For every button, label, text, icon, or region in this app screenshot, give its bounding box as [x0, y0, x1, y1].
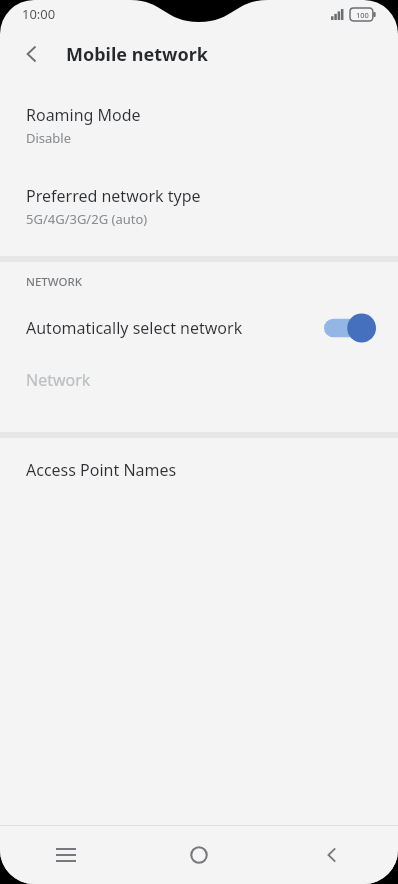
button[interactable]: Back — [265, 826, 398, 884]
staticText: NETWORK — [26, 274, 83, 290]
staticText: Preferred network type — [26, 185, 201, 207]
staticText: Roaming Mode — [26, 104, 141, 126]
button[interactable]: Preferred network type — [0, 151, 398, 232]
button[interactable]: Back — [10, 32, 54, 76]
button[interactable]: Roaming Mode — [0, 92, 398, 151]
button[interactable]: Home — [132, 826, 265, 884]
staticText: 10:00 — [22, 5, 56, 23]
button[interactable]: Recents — [0, 826, 132, 884]
staticText: Network — [26, 369, 91, 391]
staticText: Mobile network — [66, 42, 208, 67]
button[interactable]: Access Point Names — [0, 438, 398, 502]
staticText: 5G/4G/3G/2G (auto) — [26, 210, 148, 228]
staticText: Automatically select network — [26, 317, 324, 339]
staticText: 100 — [356, 10, 369, 20]
button[interactable]: Automatically select network — [0, 302, 398, 354]
staticText: Access Point Names — [26, 459, 177, 481]
staticText: Disable — [26, 129, 72, 147]
